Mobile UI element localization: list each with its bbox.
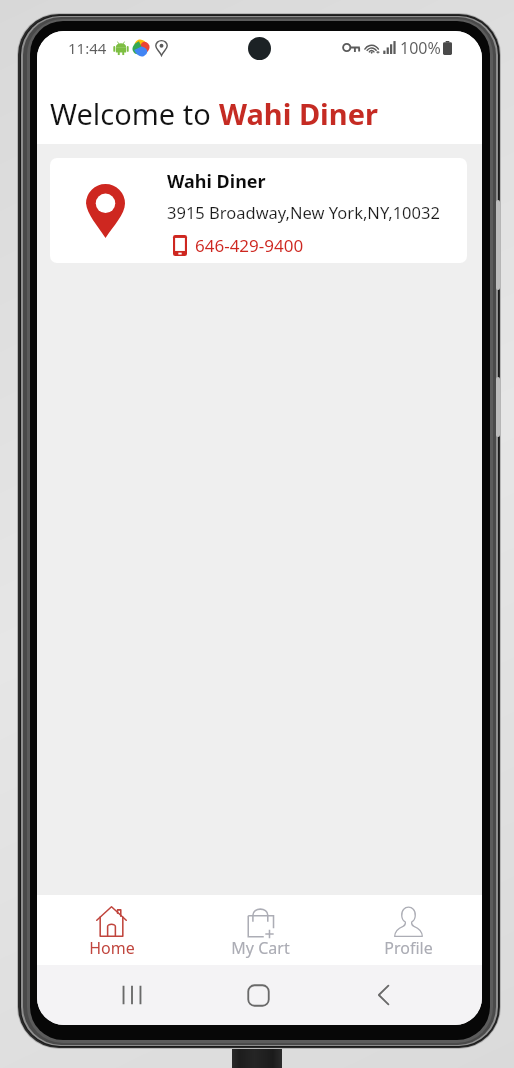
- staticText: Home: [89, 937, 135, 959]
- button[interactable]: Recent apps: [95, 965, 169, 1025]
- button[interactable]: Back: [347, 965, 421, 1025]
- staticText: Wahi Diner: [167, 169, 266, 194]
- button[interactable]: My Cart: [186, 895, 334, 965]
- staticText: 646-429-9400: [195, 234, 304, 257]
- staticText: 3915 Broadway,New York,NY,10032: [167, 201, 440, 223]
- button[interactable]: Wahi Diner: [50, 158, 467, 263]
- staticText: Profile: [384, 937, 433, 959]
- staticText: Wahi Diner: [219, 94, 378, 133]
- staticText: 11:44: [68, 38, 107, 58]
- button[interactable]: Profile: [334, 895, 482, 965]
- staticText: Welcome to: [50, 94, 219, 133]
- button[interactable]: Home: [221, 965, 295, 1025]
- staticText: 100%: [400, 37, 441, 59]
- button[interactable]: Home: [37, 895, 186, 965]
- staticText: My Cart: [231, 937, 290, 959]
